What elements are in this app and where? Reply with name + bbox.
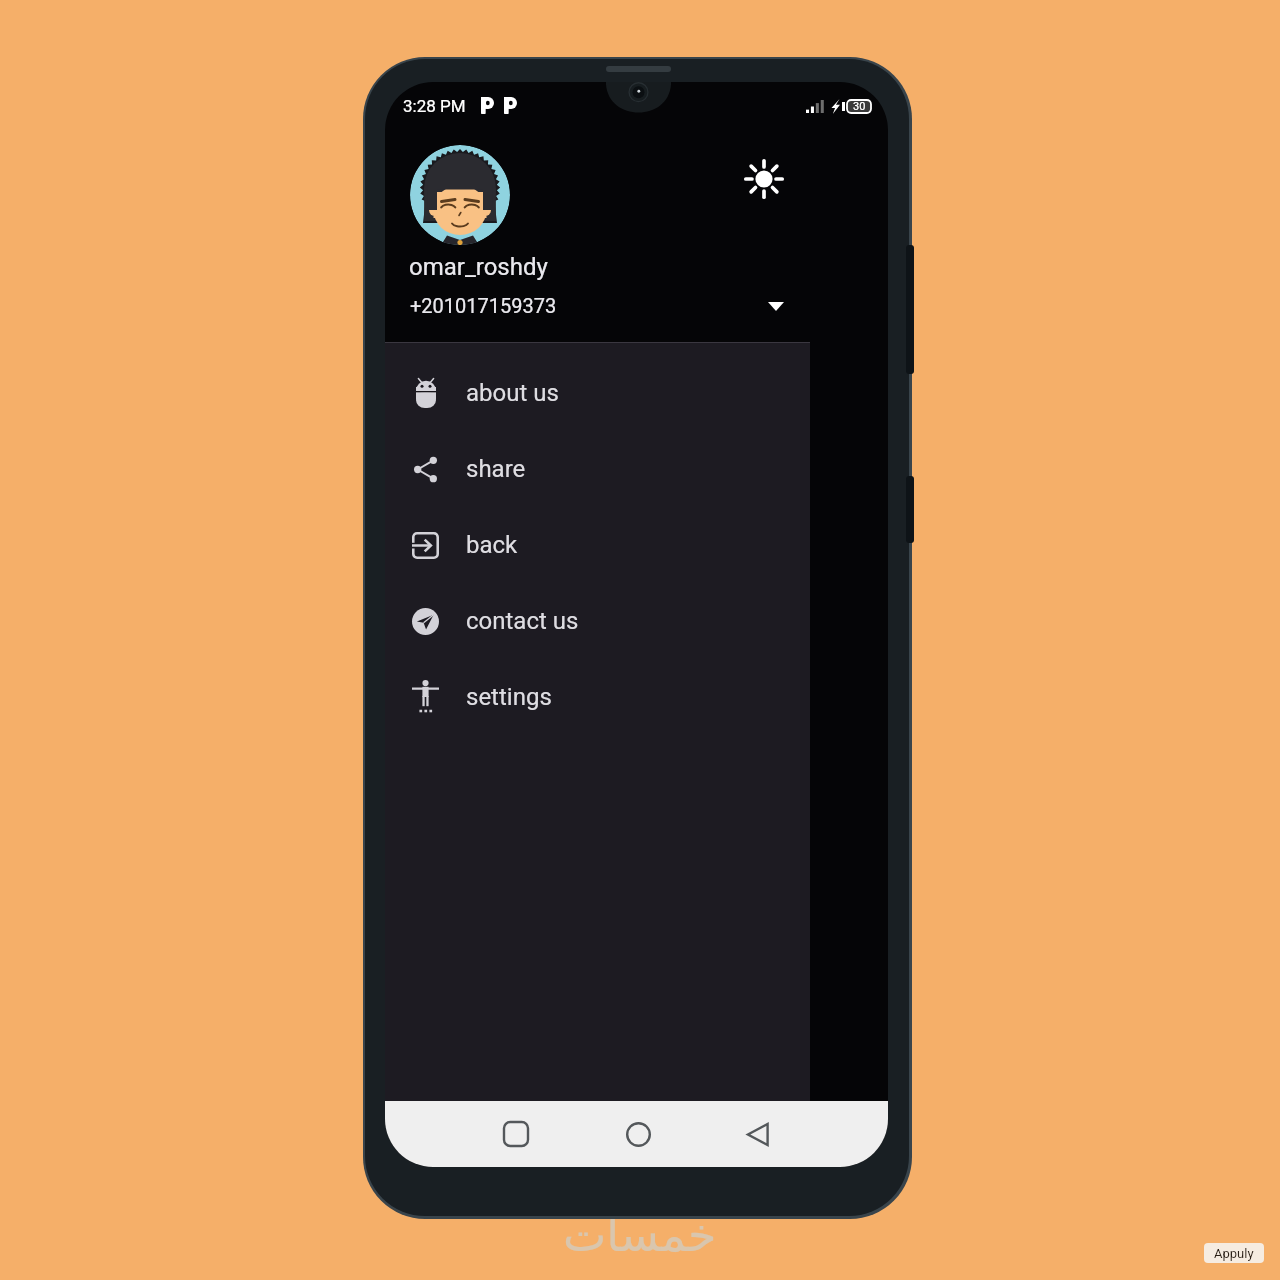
staticText: 3:28 PM [403, 96, 466, 116]
button[interactable]: Home [608, 1104, 668, 1164]
button[interactable]: settings [385, 659, 810, 735]
button[interactable]: Back [728, 1104, 788, 1164]
button[interactable]: Profile picture [410, 145, 510, 245]
button[interactable]: +201017159373 [385, 280, 810, 330]
staticText: about us [466, 379, 559, 407]
button[interactable]: Toggle theme [740, 155, 788, 203]
staticText: Appuly [1214, 1246, 1254, 1261]
staticText: 30 [853, 100, 866, 113]
button[interactable]: share [385, 431, 810, 507]
button[interactable]: back [385, 507, 810, 583]
staticText: back [466, 531, 518, 559]
staticText: +201017159373 [410, 294, 557, 317]
staticText: contact us [466, 607, 579, 635]
button[interactable]: about us [385, 355, 810, 431]
button[interactable]: Appuly [1204, 1243, 1264, 1263]
button[interactable]: contact us [385, 583, 810, 659]
staticText: omar_roshdy [409, 253, 548, 281]
staticText: خمسات [563, 1208, 717, 1262]
staticText: settings [466, 683, 552, 711]
button[interactable]: Recents [486, 1104, 546, 1164]
staticText: share [466, 455, 526, 483]
